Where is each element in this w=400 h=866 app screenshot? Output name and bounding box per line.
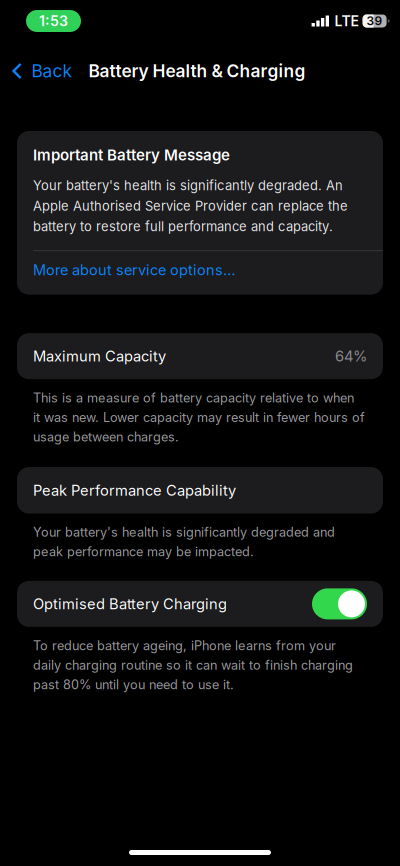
button[interactable]: Back <box>0 49 88 93</box>
staticText: peak performance may be impacted. <box>33 544 254 559</box>
staticText: 39 <box>367 14 383 28</box>
staticText: 1:53 <box>39 12 68 29</box>
staticText: Battery Health & Charging <box>88 60 305 81</box>
staticText: Your battery's health is significantly d… <box>33 178 343 193</box>
staticText: This is a measure of battery capacity re… <box>33 390 354 405</box>
staticText: daily charging routine so it can wait to… <box>33 657 353 673</box>
button[interactable]: Maximum Capacity <box>0 333 400 379</box>
staticText: Peak Performance Capability <box>33 481 236 499</box>
staticText: battery to restore full performance and … <box>33 219 333 234</box>
staticText: Back <box>31 60 72 81</box>
staticText: LTE <box>335 12 360 29</box>
staticText: past 80% until you need to use it. <box>33 677 234 692</box>
staticText: More about service options… <box>33 261 236 279</box>
staticText: Apple Authorised Service Provider can re… <box>33 198 348 214</box>
staticText: it was new. Lower capacity may result in… <box>33 410 365 425</box>
button[interactable]: Peak Performance Capability <box>0 467 400 513</box>
staticText: 64% <box>335 347 367 365</box>
staticText: Important Battery Message <box>33 146 230 164</box>
staticText: Your battery's health is significantly d… <box>33 524 335 540</box>
staticText: To reduce battery ageing, iPhone learns … <box>33 638 336 653</box>
staticText: Optimised Battery Charging <box>33 595 227 613</box>
staticText: Maximum Capacity <box>33 347 166 365</box>
button[interactable]: Optimised Battery Charging <box>312 588 367 619</box>
staticText: usage between charges. <box>33 429 179 444</box>
button[interactable]: More about service options… <box>33 251 367 295</box>
